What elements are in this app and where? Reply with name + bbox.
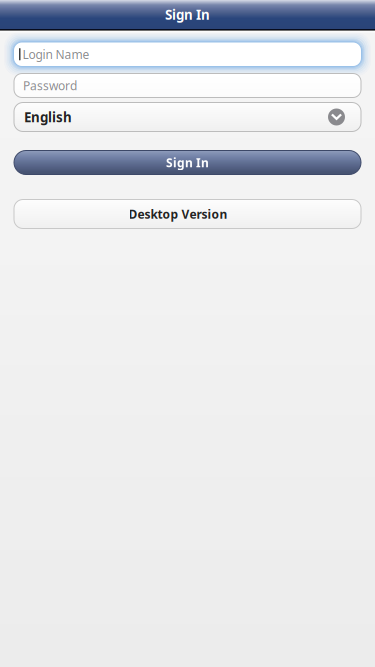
staticText: Password <box>23 77 77 93</box>
button[interactable]: English <box>14 102 361 131</box>
staticText: Sign In <box>166 154 209 170</box>
staticText: Login Name <box>22 46 89 62</box>
button[interactable]: Password <box>14 73 361 97</box>
button[interactable]: Desktop Version <box>14 199 361 228</box>
button[interactable]: Login Name <box>14 42 361 66</box>
button[interactable]: Sign In <box>14 150 361 174</box>
staticText: Desktop Version <box>128 206 227 222</box>
staticText: English <box>24 108 72 126</box>
staticText: Sign In <box>165 6 210 23</box>
